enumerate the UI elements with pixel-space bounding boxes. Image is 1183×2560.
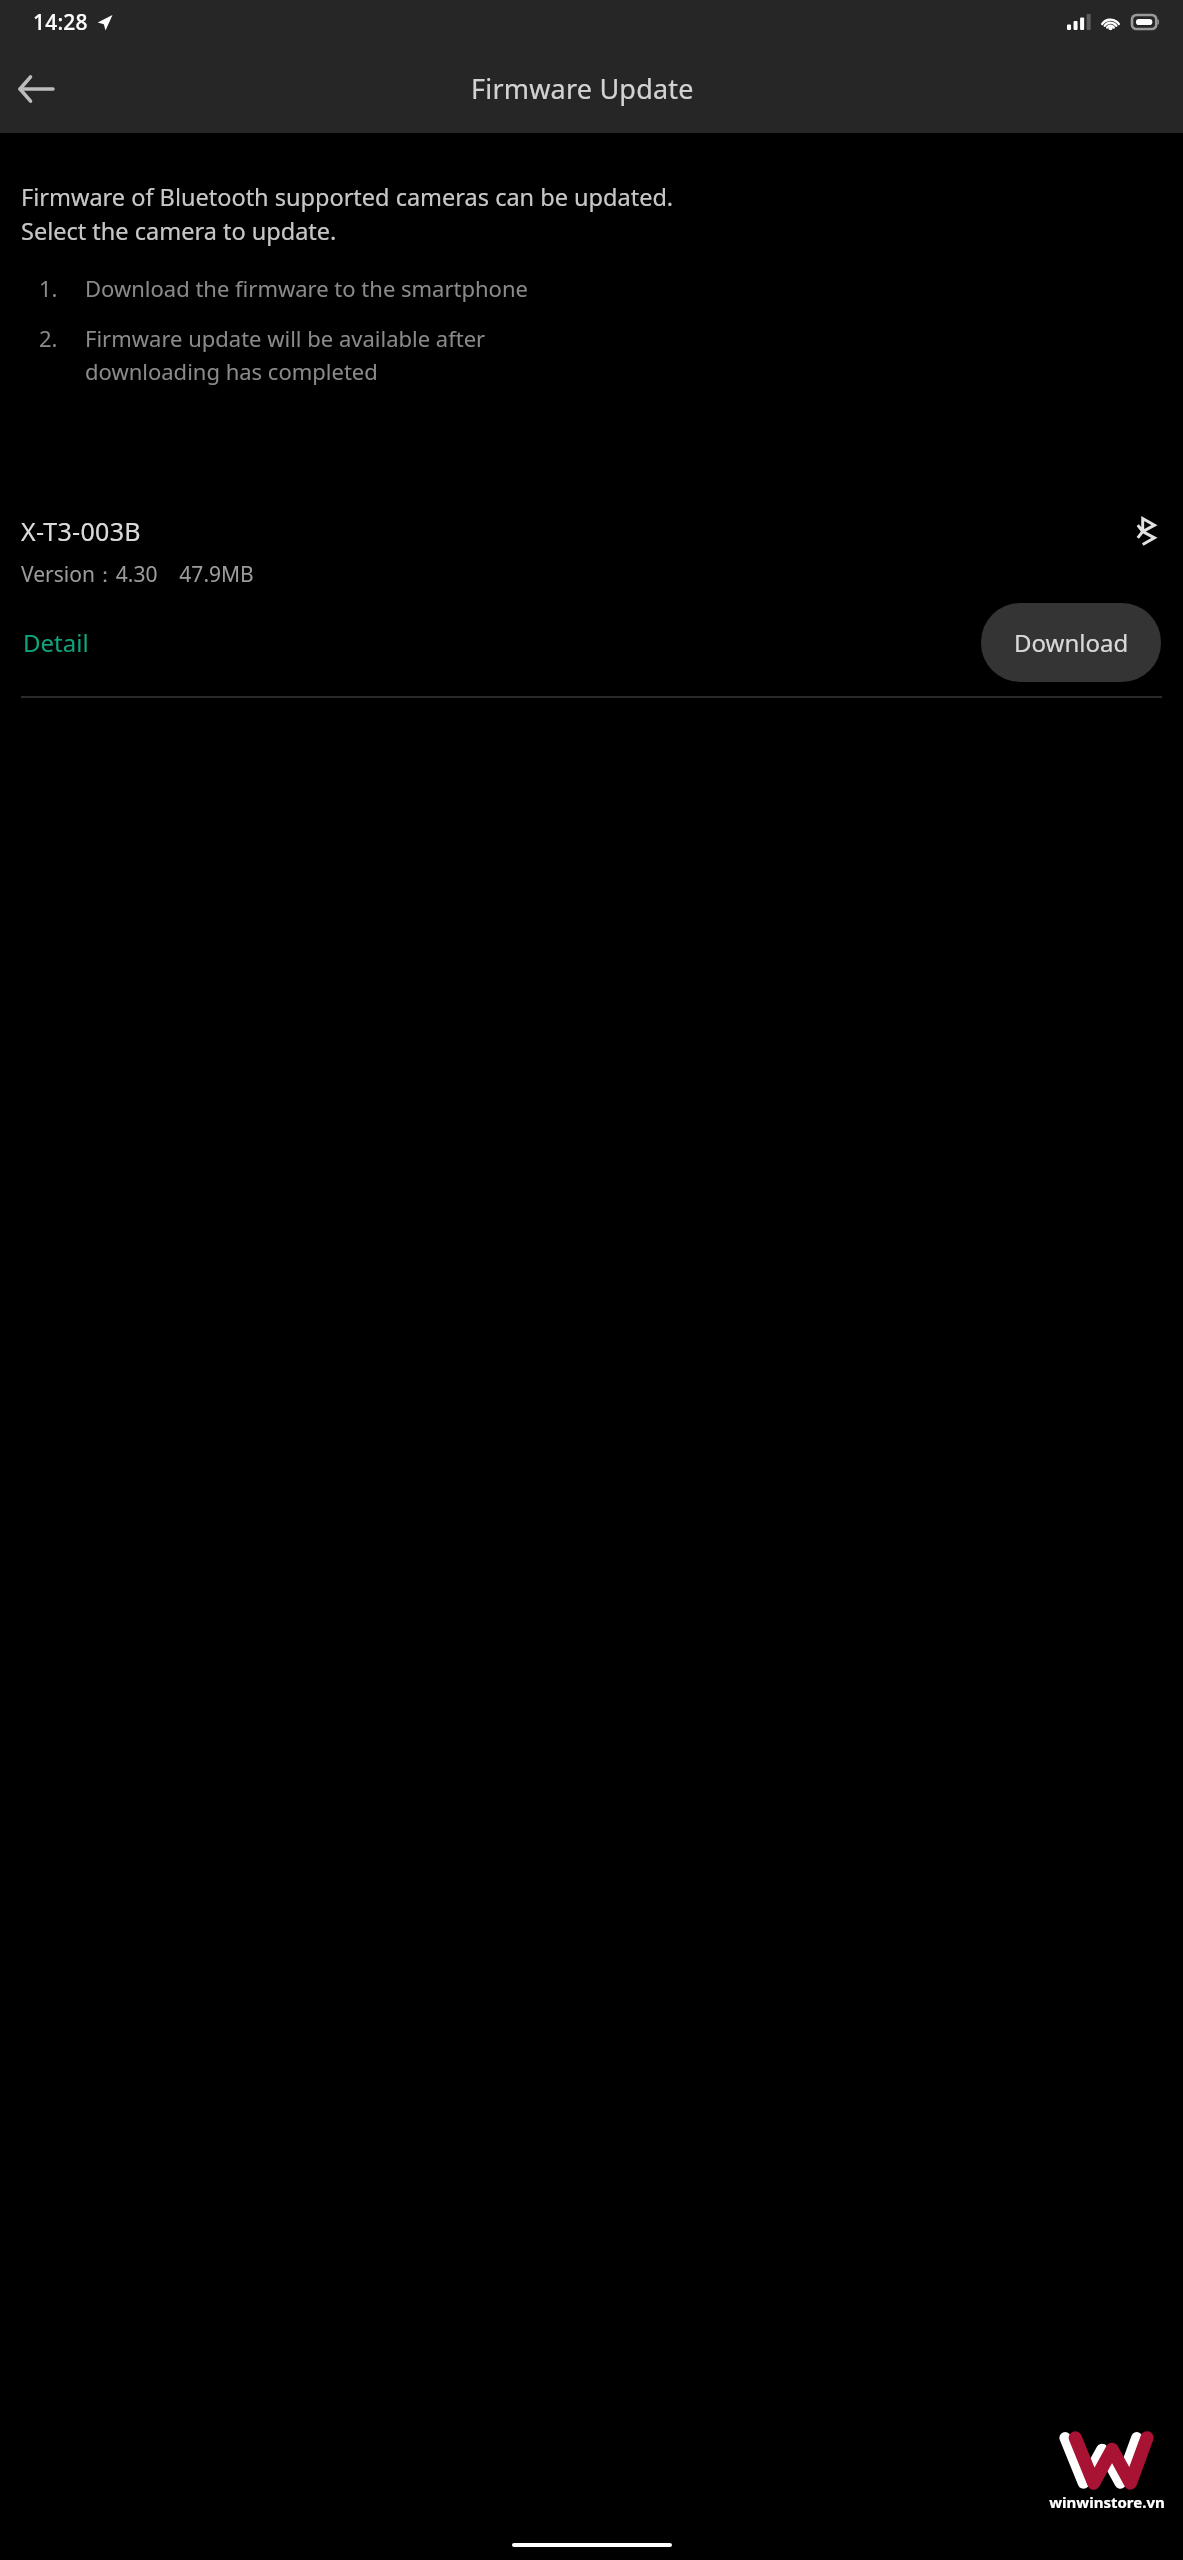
staticText: 2. (39, 323, 73, 353)
staticText: Detail (23, 626, 89, 659)
staticText: Firmware of Bluetooth supported cameras … (21, 181, 674, 247)
other: Bluetooth connected (1131, 516, 1161, 546)
staticText: winwinstore.vn (1049, 2492, 1165, 2512)
staticText: Download (1014, 626, 1129, 659)
button[interactable]: Download (981, 603, 1161, 682)
staticText: Version：4.30 47.9MB (21, 560, 254, 589)
staticText: Download the firmware to the smartphone (85, 273, 528, 303)
button[interactable]: Detail (21, 614, 91, 671)
staticText: 14:28 (33, 8, 88, 37)
staticText: X-T3-003B (21, 514, 141, 548)
staticText: Firmware Update (471, 70, 694, 107)
button[interactable]: Back (8, 61, 64, 117)
staticText: Firmware update will be available after … (85, 323, 486, 386)
staticText: 1. (39, 273, 73, 303)
